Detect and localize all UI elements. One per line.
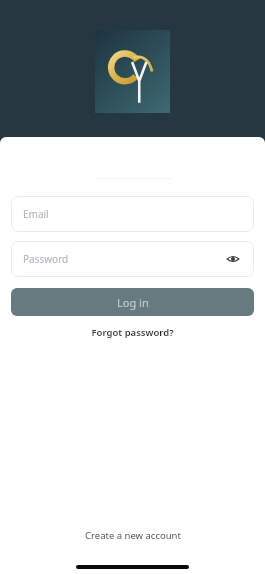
staticText: Forgot password?: [91, 326, 174, 339]
staticText: Log in: [117, 295, 149, 310]
staticText: Email: [23, 207, 242, 221]
button[interactable]: Show password: [224, 250, 242, 268]
button[interactable]: Log in: [11, 288, 254, 316]
staticText: Password: [23, 252, 224, 266]
button[interactable]: Password: [11, 241, 254, 277]
button[interactable]: Email: [11, 196, 254, 232]
button[interactable]: Forgot password?: [83, 324, 182, 341]
staticText: Create a new account: [85, 529, 181, 542]
button[interactable]: Create a new account: [75, 526, 191, 545]
